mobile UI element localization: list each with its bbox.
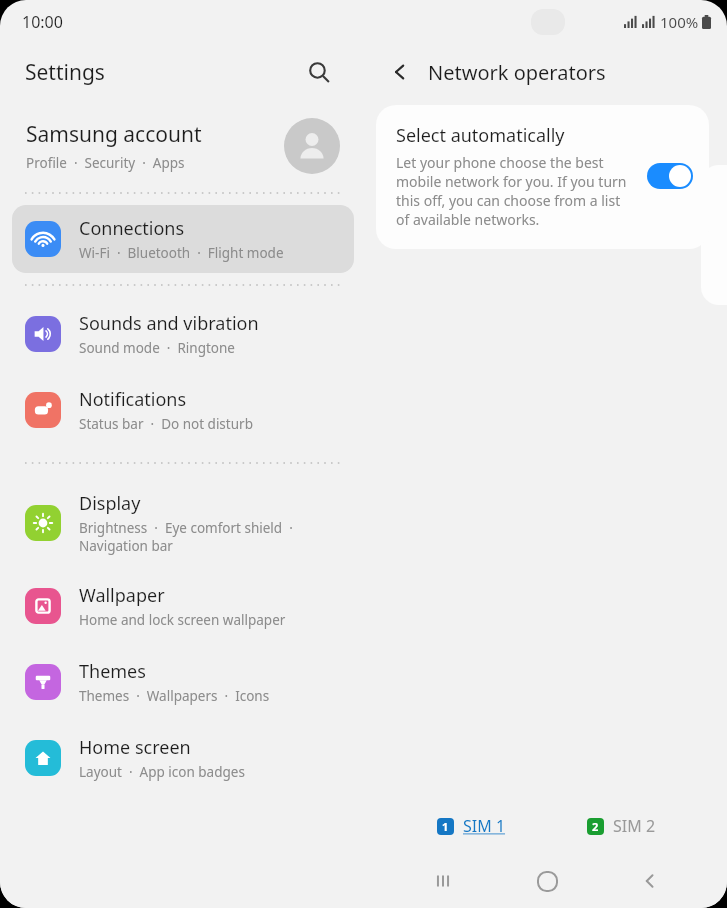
button[interactable]: Recents <box>417 855 469 907</box>
staticText: SIM 1 <box>463 815 506 837</box>
staticText: Connections <box>79 216 185 241</box>
staticText: Notifications <box>79 387 187 412</box>
staticText: Layout · App icon badges <box>79 763 245 781</box>
staticText: Wallpaper <box>79 583 165 608</box>
staticText: SIM 2 <box>613 815 656 837</box>
button[interactable]: Connections <box>12 205 354 273</box>
button[interactable]: Wallpaper <box>12 572 354 640</box>
button[interactable]: Search <box>298 51 340 93</box>
staticText: Brightness · Eye comfort shield · Naviga… <box>79 519 293 555</box>
button[interactable]: Samsung account <box>0 100 366 192</box>
staticText: Profile · Security · Apps <box>26 154 185 172</box>
button[interactable]: Back <box>380 52 420 92</box>
button[interactable]: Notifications <box>12 376 354 444</box>
staticText: 10:00 <box>22 11 63 33</box>
staticText: Home screen <box>79 735 191 760</box>
staticText: Settings <box>25 58 105 87</box>
button[interactable]: Sounds and vibration <box>12 300 354 368</box>
staticText: Network operators <box>428 59 606 86</box>
button[interactable]: Themes <box>12 648 354 716</box>
staticText: 100% <box>660 12 699 32</box>
staticText: Sound mode · Ringtone <box>79 339 235 357</box>
button[interactable]: Select automatically toggle <box>647 163 693 189</box>
button[interactable]: Select automatically <box>376 105 709 249</box>
staticText: Samsung account <box>26 120 202 149</box>
staticText: Wi-Fi · Bluetooth · Flight mode <box>79 244 284 262</box>
staticText: Select automatically <box>396 123 565 148</box>
staticText: Display <box>79 491 141 516</box>
staticText: Home and lock screen wallpaper <box>79 611 286 629</box>
button[interactable]: Display <box>12 480 354 566</box>
staticText: Themes · Wallpapers · Icons <box>79 687 270 705</box>
button[interactable]: 2 <box>577 809 666 843</box>
button[interactable]: 1 <box>427 809 516 843</box>
staticText: Status bar · Do not disturb <box>79 415 253 433</box>
staticText: Let your phone choose the best mobile ne… <box>396 153 635 229</box>
button[interactable]: Home screen <box>12 724 354 792</box>
button[interactable]: Back <box>624 855 676 907</box>
staticText: 2 <box>592 819 599 834</box>
button[interactable]: Home <box>521 855 573 907</box>
staticText: Sounds and vibration <box>79 311 259 336</box>
staticText: 1 <box>442 819 449 834</box>
staticText: Themes <box>79 659 146 684</box>
